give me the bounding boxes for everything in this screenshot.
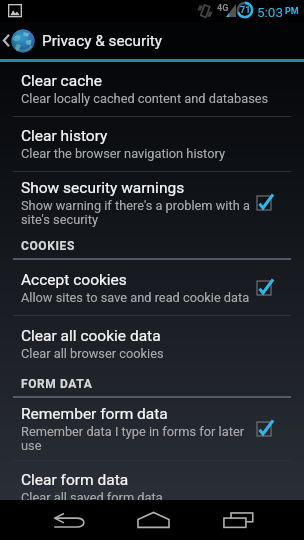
staticText: Remember data I type in forms for later … [21,424,245,453]
staticText: Clear all browser cookies [21,346,164,361]
button[interactable]: Show security warnings [0,172,304,234]
staticText: Clear cache [21,72,103,90]
staticText: Clear history [21,127,108,145]
staticText: Clear form data [21,471,129,489]
staticText: Show security warnings [21,179,185,197]
staticText: 4G [217,3,229,14]
staticText: Clear the browser navigation history [21,146,225,161]
button[interactable]: Clear cache [0,62,304,116]
button[interactable]: Accept cookies [0,260,304,316]
staticText: 5:03 [257,4,284,20]
button[interactable]: Clear form data [0,461,304,500]
staticText: Privacy & security [42,32,163,50]
button[interactable]: Recent apps [196,500,280,540]
button[interactable]: Navigate up [0,22,35,59]
button[interactable]: Clear all cookie data [0,316,304,371]
staticText: 71 [240,5,251,16]
staticText: Accept cookies [21,271,127,289]
staticText: Clear all cookie data [21,327,161,345]
staticText: PM [285,6,299,17]
button[interactable]: Clear history [0,117,304,171]
staticText: Show warning if there's a problem with a… [21,198,250,227]
staticText: FORM DATA [21,377,93,391]
staticText: COOKIES [21,239,75,253]
staticText: Clear all saved form data [21,490,163,500]
button[interactable]: Remember form data [0,397,304,460]
staticText: Clear locally cached content and databas… [21,91,269,106]
button[interactable]: Home [111,500,195,540]
staticText: Remember form data [21,405,168,423]
button[interactable]: Back [27,500,111,540]
staticText: Allow sites to save and read cookie data [21,290,250,305]
